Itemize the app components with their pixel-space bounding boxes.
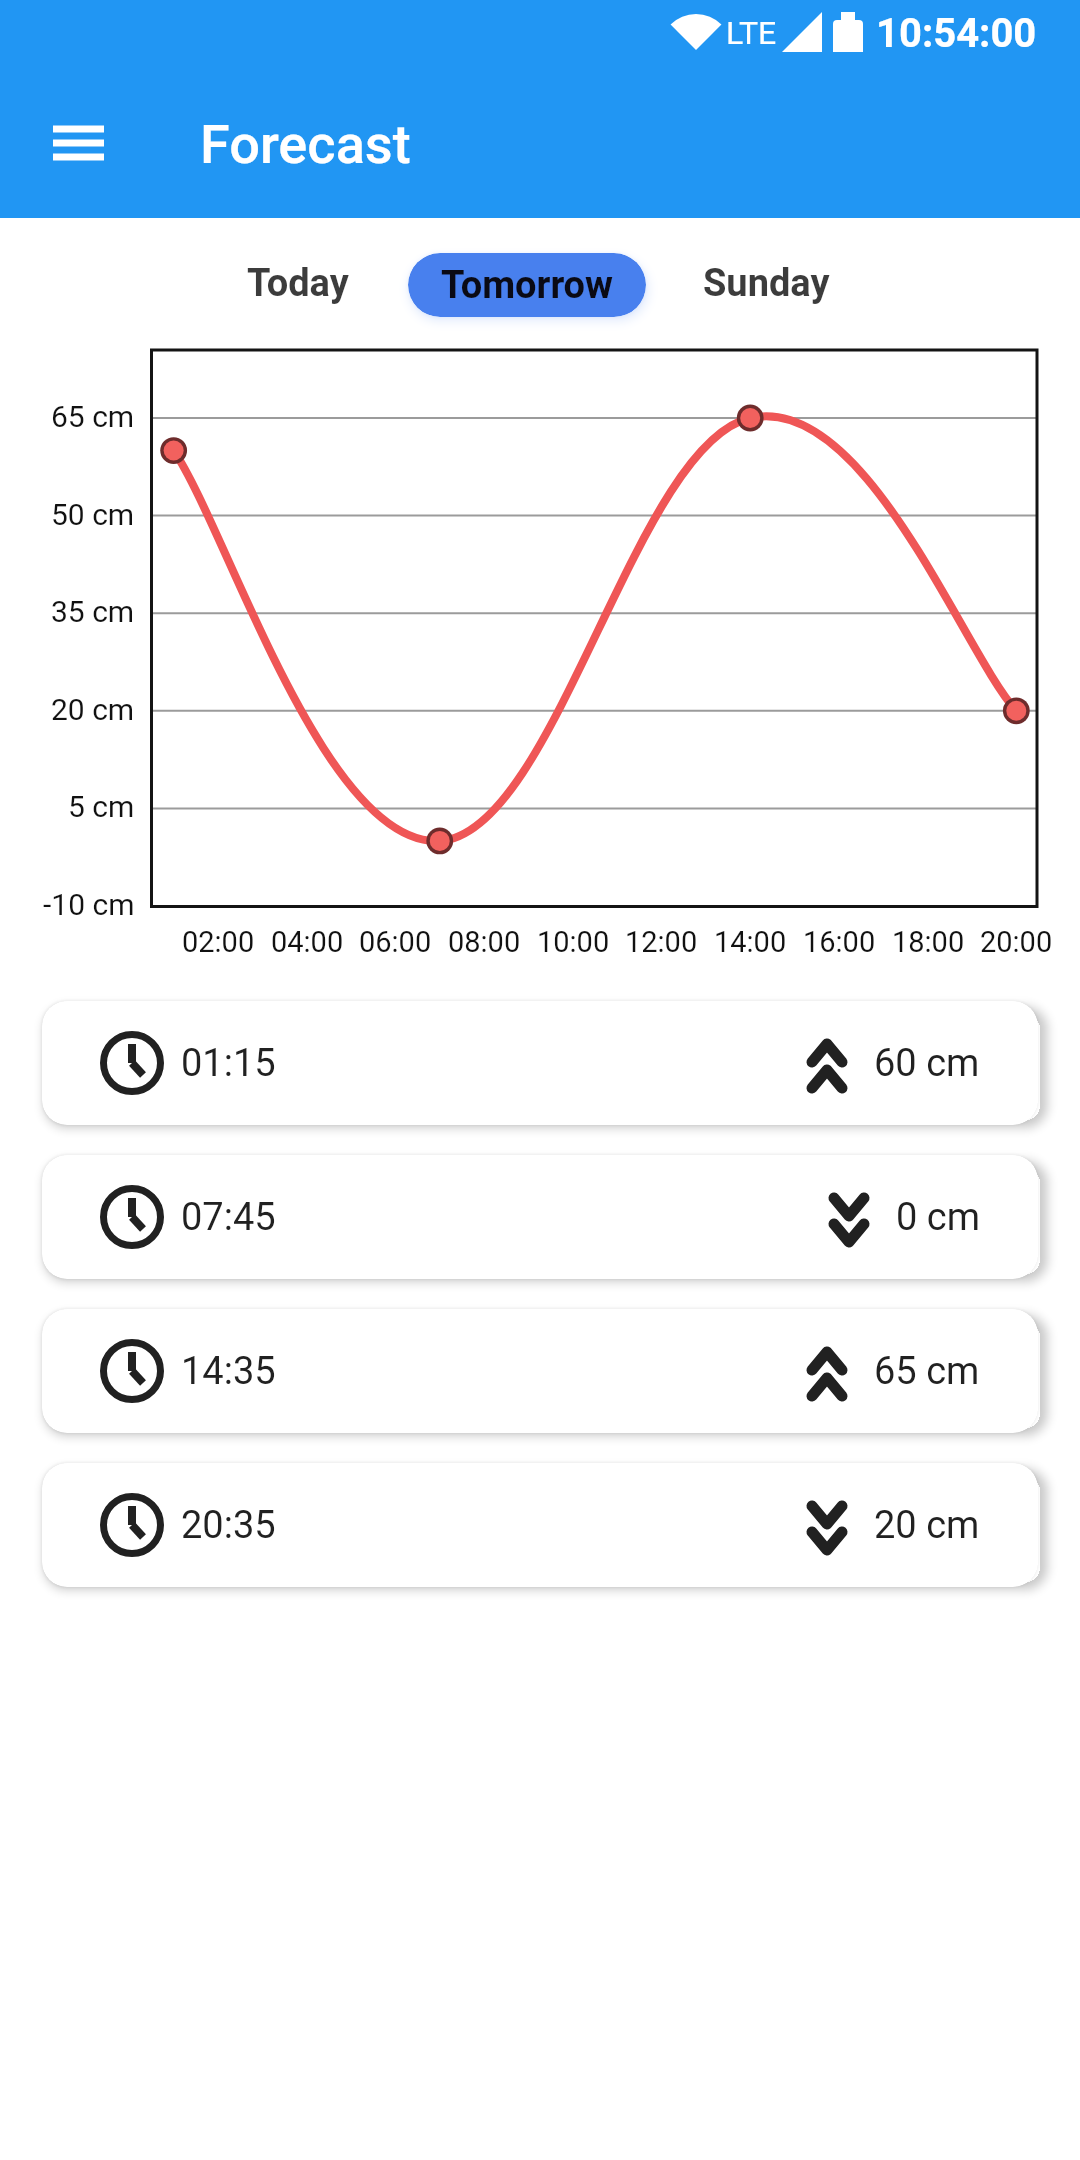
staticText: Today [247,261,349,306]
staticText: 20 cm [874,1503,980,1548]
staticText: 0 cm [896,1195,980,1240]
button[interactable] [30,106,126,182]
staticText: 20 cm [51,692,135,727]
staticText: Forecast [200,113,411,176]
staticText: 07:45 [181,1195,276,1240]
staticText: -10 cm [43,887,135,922]
button[interactable]: Today [228,251,368,315]
staticText: 5 cm [68,789,135,824]
staticText: 35 cm [51,594,135,629]
button[interactable]: 14:35 [42,1309,1038,1433]
staticText: 60 cm [874,1041,980,1086]
button[interactable]: Tomorrow [408,253,646,317]
staticText: 65 cm [51,399,135,434]
staticText: 14:00 [714,925,787,959]
staticText: 18:00 [892,925,965,959]
staticText: 08:00 [448,925,521,959]
staticText: 10:00 [537,925,610,959]
staticText: 04:00 [271,925,344,959]
staticText: 20:00 [980,925,1053,959]
staticText: Sunday [703,261,830,306]
staticText: LTE [726,14,777,52]
staticText: 02:00 [182,925,255,959]
button[interactable]: Sunday [693,251,840,315]
button[interactable]: 20:35 [42,1463,1038,1587]
staticText: 65 cm [874,1349,980,1394]
staticText: Tomorrow [441,263,614,308]
staticText: 01:15 [181,1041,276,1086]
staticText: 10:54:00 [876,10,1037,57]
staticText: 50 cm [51,497,135,532]
staticText: 20:35 [181,1503,276,1548]
staticText: 12:00 [625,925,698,959]
button[interactable]: 01:15 [42,1001,1038,1125]
staticText: 06:00 [359,925,432,959]
staticText: 14:35 [181,1349,276,1394]
staticText: 16:00 [803,925,876,959]
button[interactable]: 07:45 [42,1155,1038,1279]
